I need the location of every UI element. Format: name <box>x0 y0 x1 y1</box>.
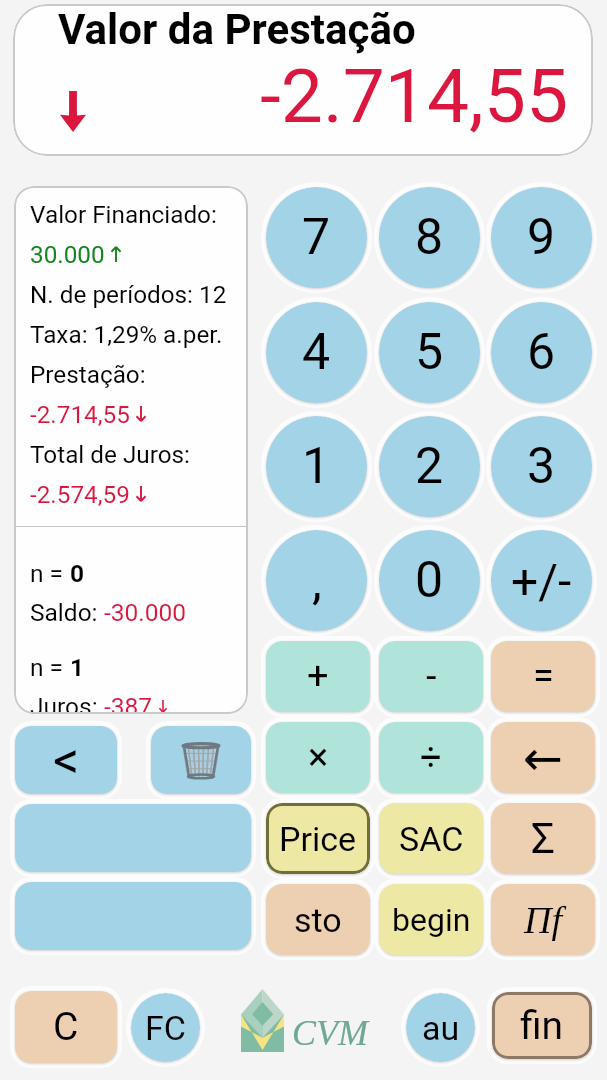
button[interactable]: 2 <box>374 411 485 522</box>
staticText: Valor da Prestação <box>58 5 416 54</box>
staticText: 0 <box>415 551 444 610</box>
button[interactable]: + <box>261 636 375 717</box>
button[interactable]: = <box>486 636 600 717</box>
button[interactable]: < <box>10 721 122 799</box>
staticText: - <box>426 654 437 699</box>
staticText: n = <box>30 653 70 682</box>
staticText: -30.000 <box>104 598 187 627</box>
button[interactable]: Valor da Prestação <box>13 4 593 156</box>
staticText: 5 <box>415 323 444 382</box>
staticText: Valor Financiado: <box>30 200 217 228</box>
staticText: -2.714,55 <box>260 52 569 140</box>
staticText: Σ <box>531 814 555 863</box>
button[interactable]: FC <box>126 988 205 1067</box>
staticText: 7 <box>302 208 331 267</box>
button[interactable]: Delete <box>146 721 256 799</box>
button[interactable]: fin <box>487 987 597 1064</box>
staticText: × <box>308 735 329 780</box>
staticText: Saldo: <box>30 598 104 627</box>
button[interactable]: Πf <box>486 879 600 960</box>
button[interactable]: 1 <box>261 411 372 522</box>
staticText: + <box>307 654 329 699</box>
staticText: Price <box>279 819 357 859</box>
staticText: n = <box>30 559 70 588</box>
staticText: 3 <box>527 437 556 496</box>
staticText: Πf <box>524 899 562 941</box>
staticText: ÷ <box>420 735 442 780</box>
button[interactable]: 8 <box>374 182 485 293</box>
staticText: FC <box>145 1008 186 1048</box>
staticText: 2 <box>415 437 444 496</box>
staticText: 9 <box>527 208 556 267</box>
staticText: fin <box>520 1003 564 1049</box>
staticText: Prestação: <box>30 360 146 388</box>
staticText: Total de Juros: <box>30 440 190 468</box>
button[interactable] <box>10 877 256 955</box>
button[interactable]: Σ <box>486 798 600 879</box>
button[interactable]: ÷ <box>374 717 488 798</box>
staticText: 1 <box>302 437 331 496</box>
staticText: -387 <box>104 692 159 714</box>
staticText: = <box>533 654 554 699</box>
button[interactable]: , <box>261 525 372 636</box>
button[interactable]: SAC <box>374 798 488 879</box>
button[interactable]: 5 <box>374 297 485 408</box>
staticText: -2.714,55 <box>30 400 136 428</box>
staticText: N. de períodos: 12 <box>30 280 227 308</box>
button[interactable]: 6 <box>486 297 597 408</box>
staticText: Taxa: 1,29% a.per. <box>30 320 223 348</box>
staticText: SAC <box>399 819 464 859</box>
button[interactable]: Price <box>261 798 375 879</box>
staticText: , <box>312 552 322 611</box>
button[interactable]: 7 <box>261 182 372 293</box>
staticText: begin <box>392 901 471 939</box>
staticText: 6 <box>527 323 556 382</box>
button[interactable]: 0 <box>374 525 485 636</box>
button[interactable]: ← <box>486 717 600 798</box>
button[interactable]: × <box>261 717 375 798</box>
staticText: 4 <box>302 323 331 382</box>
staticText: 8 <box>415 208 444 267</box>
staticText: au <box>422 1008 460 1048</box>
button[interactable]: Valor Financiado: <box>14 186 248 714</box>
button[interactable]: C <box>10 986 122 1068</box>
staticText: -2.574,59 <box>30 480 136 508</box>
button[interactable]: sto <box>261 879 375 960</box>
button[interactable]: +/- <box>486 525 597 636</box>
button[interactable]: 9 <box>486 182 597 293</box>
button[interactable]: begin <box>374 879 488 960</box>
staticText: +/- <box>511 553 572 609</box>
button[interactable]: 4 <box>261 297 372 408</box>
staticText: Juros: <box>30 692 104 714</box>
button[interactable]: - <box>374 636 488 717</box>
button[interactable]: 3 <box>486 411 597 522</box>
staticText: 1 <box>70 653 85 682</box>
staticText: 30.000 <box>30 240 111 268</box>
button[interactable]: au <box>401 988 480 1067</box>
staticText: < <box>53 730 80 791</box>
staticText: CVM <box>292 1013 368 1053</box>
staticText: sto <box>294 900 342 940</box>
staticText: 0 <box>70 559 85 588</box>
button[interactable] <box>10 799 256 877</box>
staticText: C <box>53 1004 79 1050</box>
staticText: ← <box>523 730 564 786</box>
